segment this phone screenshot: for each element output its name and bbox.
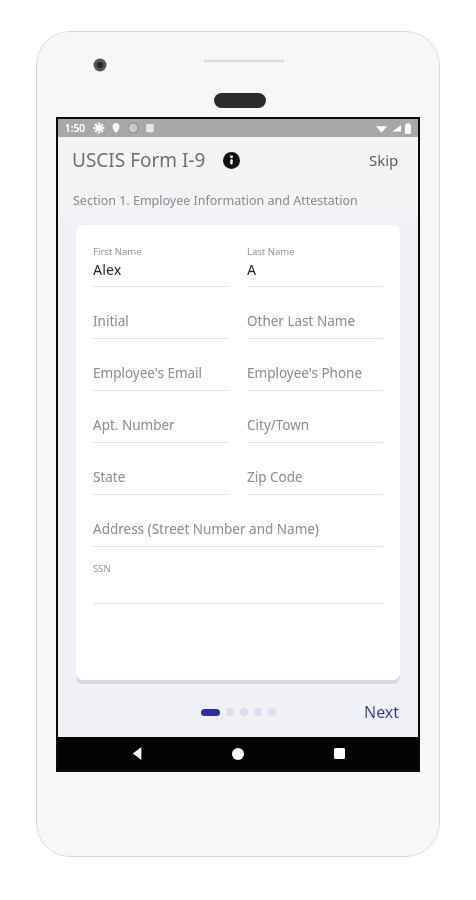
staticText: A bbox=[247, 260, 257, 279]
staticText: Last Name bbox=[247, 245, 295, 258]
staticText: Other Last Name (if ... bbox=[247, 312, 383, 330]
staticText: Initial bbox=[93, 312, 129, 330]
staticText: Employee's Phone bbox=[247, 364, 363, 382]
button[interactable]: Apt. Number bbox=[93, 406, 229, 443]
button[interactable]: Other Last Name (if ... bbox=[247, 302, 383, 339]
button[interactable]: Information bbox=[219, 148, 243, 172]
staticText: First Name bbox=[93, 245, 142, 258]
button[interactable]: Last Name bbox=[247, 245, 383, 287]
staticText: SSN bbox=[93, 562, 111, 575]
staticText: Apt. Number bbox=[93, 416, 175, 434]
staticText: Skip bbox=[369, 150, 399, 170]
staticText: Alex bbox=[93, 260, 122, 279]
staticText: Zip Code bbox=[247, 468, 303, 486]
staticText: 1:50 bbox=[65, 121, 85, 135]
staticText: Employee's Email bbox=[93, 364, 203, 382]
button[interactable]: Home bbox=[216, 737, 260, 770]
button[interactable]: State bbox=[93, 458, 229, 495]
button[interactable]: Recent apps bbox=[317, 737, 361, 770]
staticText: Section 1. Employee Information and Atte… bbox=[73, 192, 358, 209]
button[interactable]: First Name bbox=[93, 245, 229, 287]
staticText: Address (Street Number and Name) bbox=[93, 520, 319, 538]
button[interactable]: Skip bbox=[362, 145, 406, 175]
staticText: USCIS Form I-9 bbox=[72, 147, 206, 173]
button[interactable]: Back bbox=[115, 737, 159, 770]
button[interactable]: Employee's Email bbox=[93, 354, 229, 391]
button[interactable]: Initial bbox=[93, 302, 229, 339]
staticText: City/Town bbox=[247, 416, 310, 434]
button[interactable]: Zip Code bbox=[247, 458, 383, 495]
button[interactable]: Address (Street Number and Name) bbox=[93, 510, 383, 547]
staticText: Next bbox=[364, 701, 400, 723]
staticText: State bbox=[93, 468, 126, 486]
button[interactable]: Employee's Phone bbox=[247, 354, 383, 391]
button[interactable]: SSN bbox=[93, 562, 383, 604]
button[interactable]: Next bbox=[358, 696, 406, 728]
button[interactable]: City/Town bbox=[247, 406, 383, 443]
